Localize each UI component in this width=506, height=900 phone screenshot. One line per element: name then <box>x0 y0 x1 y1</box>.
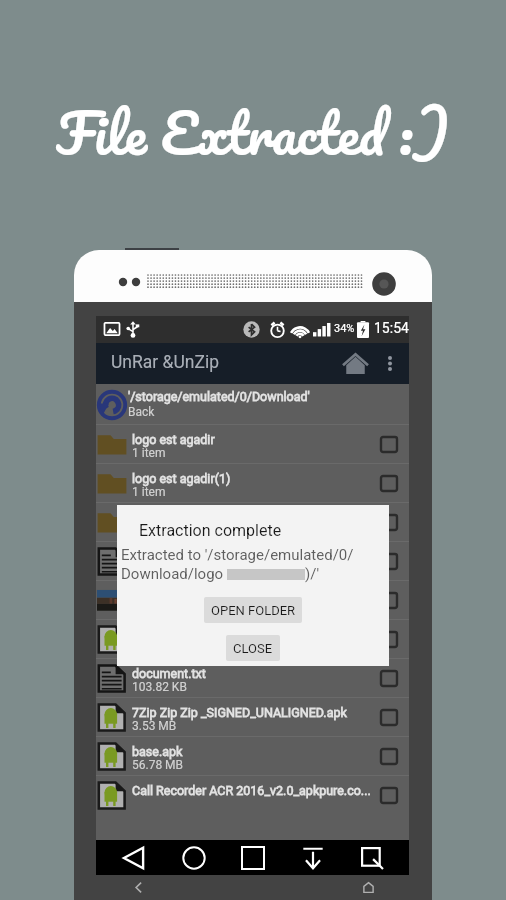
staticText: Download/logo <box>121 565 227 583</box>
button[interactable]: IMG_20160101.jpg <box>96 581 409 619</box>
button[interactable]: Home folder <box>336 343 374 384</box>
staticText: 103.82 KB <box>132 680 187 694</box>
staticText: UnRar &UnZip <box>111 352 220 373</box>
staticText: Back <box>128 405 155 419</box>
staticText: 1 item <box>132 485 166 499</box>
staticText: Extracted to '/storage/emulated/0/ <box>121 546 354 564</box>
button[interactable]: OPEN FOLDER <box>204 597 302 623</box>
staticText: 34% <box>334 322 355 335</box>
staticText: Call Recorder ACR 2016_v2.0_apkpure.co..… <box>132 783 371 798</box>
staticText: OPEN FOLDER <box>211 603 296 618</box>
button[interactable]: Recent apps <box>231 840 274 875</box>
button[interactable]: Home <box>172 840 216 875</box>
button[interactable]: Screenshot <box>350 840 394 875</box>
button[interactable]: document.txt <box>96 659 409 697</box>
button[interactable]: base.apk <box>96 737 409 775</box>
staticText: 3.53 MB <box>132 719 177 733</box>
button[interactable]: CLOSE <box>226 635 280 661</box>
button[interactable]: More options <box>379 343 401 384</box>
staticText: document.txt <box>132 666 206 681</box>
staticText: 56.78 MB <box>132 758 184 772</box>
button[interactable]: logo est agadir(1) <box>96 464 409 502</box>
button[interactable]: '/storage/emulated/0/Download' <box>96 384 409 424</box>
button[interactable]: Back <box>113 840 156 875</box>
button[interactable]: Home <box>354 875 382 900</box>
staticText: archive.zip <box>132 549 192 564</box>
staticText: 4.12 MB <box>132 563 177 577</box>
staticText: 15:54 <box>374 320 409 336</box>
button[interactable]: Back <box>124 875 152 900</box>
button[interactable]: logo est agadir <box>96 425 409 463</box>
button[interactable]: 7Zip Zip Zip _SIGNED_UNALIGNED.apk <box>96 698 409 736</box>
button[interactable]: Call Recorder ACR 2016_v2.0_apkpure.co..… <box>96 776 409 814</box>
staticText: logo est agadir(2) <box>132 510 231 525</box>
staticText: Extraction complete <box>139 521 282 540</box>
staticText: 1 item <box>132 446 166 460</box>
staticText: '/storage/emulated/0/Download' <box>128 389 310 404</box>
staticText: CLOSE <box>233 641 273 656</box>
button[interactable]: archive.zip <box>96 542 409 580</box>
staticText: IMG_20160101.jpg <box>132 588 237 603</box>
staticText: 7Zip Zip Zip _SIGNED_UNALIGNED.apk <box>132 705 347 720</box>
staticText: base.apk <box>132 744 183 759</box>
staticText: logo est agadir(1) <box>132 471 231 486</box>
button[interactable]: logo est agadir(2) <box>96 503 409 541</box>
button[interactable]: player.apk <box>96 620 409 658</box>
button[interactable]: Download <box>291 840 335 875</box>
staticText: )/' <box>305 565 320 583</box>
staticText: File Extracted :) <box>56 85 450 179</box>
staticText: 1 item <box>132 524 166 538</box>
staticText: logo est agadir <box>132 432 215 447</box>
